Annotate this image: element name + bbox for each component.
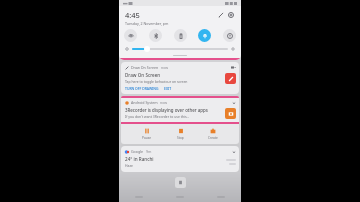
staticText: EXIT — [164, 86, 172, 91]
staticText: If you don't want 3Recorder to use this.… — [125, 114, 190, 119]
staticText: Create — [208, 136, 218, 140]
staticText: 3Recorder is displaying over other apps — [125, 107, 208, 113]
staticText: Google — [131, 149, 144, 154]
button[interactable]: Toggle 1 — [149, 29, 162, 42]
button[interactable]: Toggle 2 — [174, 29, 187, 42]
staticText: Android System — [131, 100, 158, 105]
button[interactable]: Stop — [173, 127, 188, 141]
button[interactable]: Toggle 4 — [223, 29, 236, 42]
button[interactable]: Toggle 3 — [198, 29, 211, 42]
button[interactable]: Home — [175, 177, 186, 188]
button[interactable]: Draw On Screen — [125, 65, 236, 91]
staticText: now — [160, 100, 168, 105]
button[interactable]: Pause — [138, 127, 156, 141]
staticText: Draw On Screen — [131, 65, 159, 70]
staticText: Haze — [125, 163, 133, 168]
staticText: 4:45 — [125, 10, 140, 20]
button[interactable]: Edit — [216, 10, 226, 20]
staticText: 24° in Ranchi — [125, 156, 154, 162]
staticText: Tuesday, 2 November, pm — [125, 21, 169, 26]
button[interactable]: Google — [125, 149, 236, 168]
staticText: now — [161, 65, 169, 70]
staticText: TURN OFF DRAWING — [125, 86, 159, 91]
button[interactable]: EXIT — [164, 86, 172, 91]
staticText: Draw On Screen — [125, 72, 161, 78]
staticText: 9m — [146, 149, 152, 154]
staticText: Pause — [142, 136, 152, 140]
button[interactable]: Settings — [226, 10, 236, 20]
button[interactable]: TURN OFF DRAWING — [125, 86, 159, 91]
button[interactable]: Android System — [125, 100, 236, 119]
staticText: Tap here to toggle behaviour on screen — [125, 79, 188, 84]
staticText: Stop — [177, 136, 184, 140]
button[interactable]: Create — [204, 127, 222, 141]
button[interactable]: Toggle 0 — [124, 29, 137, 42]
